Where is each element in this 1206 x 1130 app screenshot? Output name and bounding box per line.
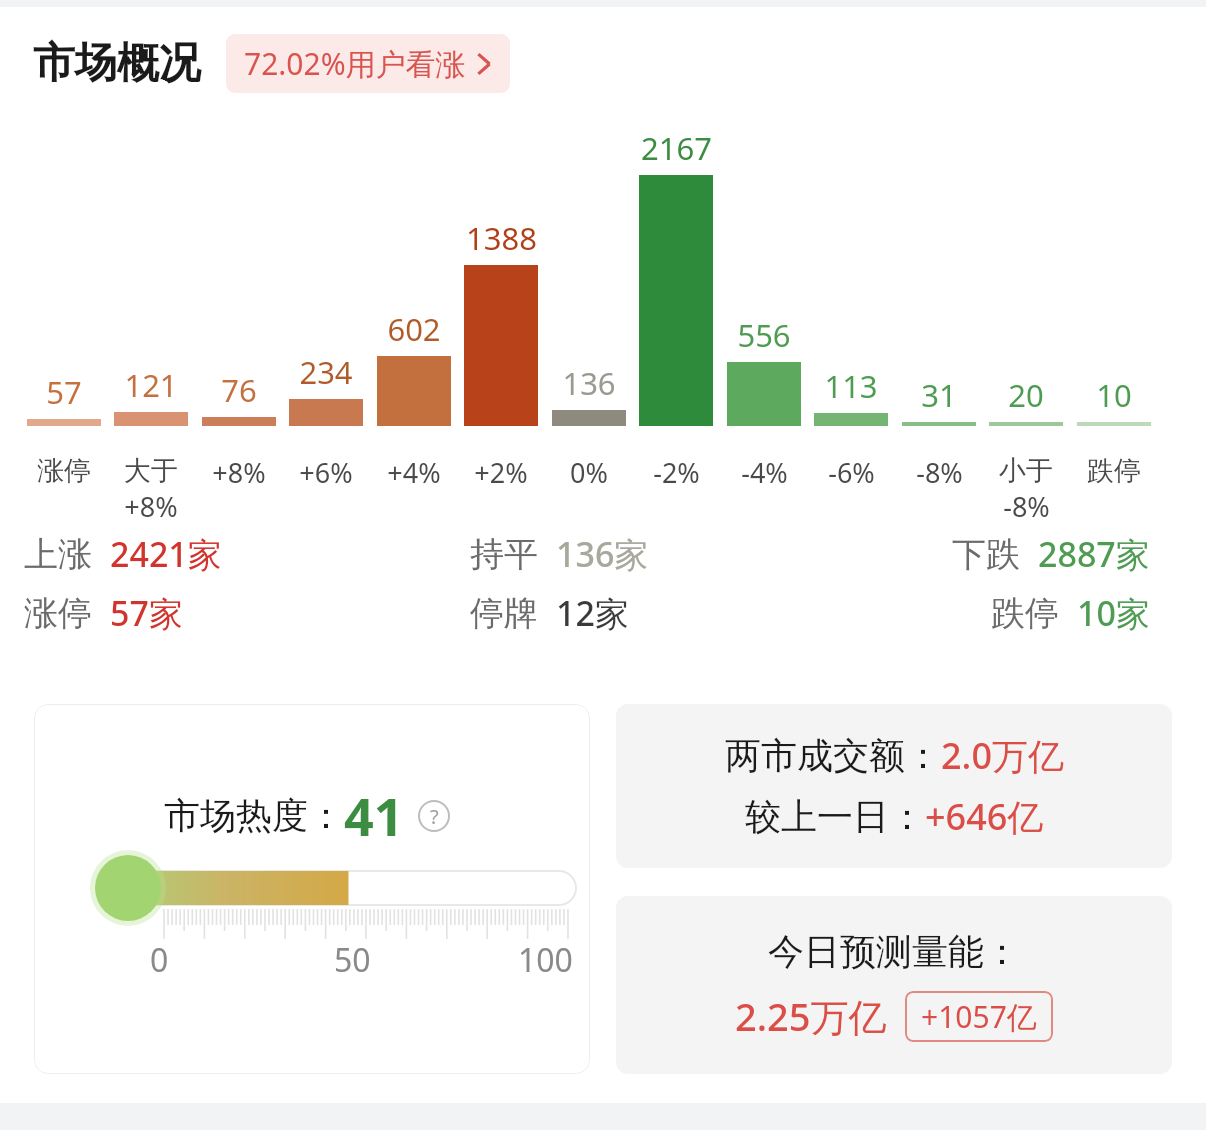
staticText: 20 xyxy=(1008,374,1044,416)
staticText: ? xyxy=(430,803,439,830)
staticText: 12家 xyxy=(556,590,629,636)
staticText: 1388 xyxy=(466,217,537,259)
staticText: 100 xyxy=(518,938,573,982)
staticText: 大于 xyxy=(124,454,178,488)
staticText: 76 xyxy=(221,369,257,411)
staticText: -6% xyxy=(828,454,875,491)
staticText: 2.0万亿 xyxy=(941,731,1064,780)
staticText: 上涨 xyxy=(24,533,92,576)
button[interactable]: 72.02%用户看涨 xyxy=(226,34,510,93)
staticText: 两市成交额： xyxy=(725,733,941,778)
staticText: +646亿 xyxy=(925,792,1044,841)
staticText: +6% xyxy=(299,454,353,491)
button[interactable]: 帮助 xyxy=(418,800,450,832)
staticText: 50 xyxy=(334,938,371,982)
staticText: +4% xyxy=(387,454,441,491)
staticText: 涨停 xyxy=(37,454,91,488)
staticText: 234 xyxy=(299,351,353,393)
staticText: 下跌 xyxy=(952,533,1020,576)
staticText: 136 xyxy=(562,362,616,404)
staticText: 41 xyxy=(344,780,404,851)
staticText: 57 xyxy=(46,371,82,413)
staticText: 涨停 xyxy=(24,592,92,635)
staticText: 57家 xyxy=(110,590,183,636)
staticText: -8% xyxy=(916,454,963,491)
staticText: 2887家 xyxy=(1038,531,1150,577)
staticText: 停牌 xyxy=(470,592,538,635)
staticText: 136家 xyxy=(556,531,649,577)
staticText: 市场概况 xyxy=(33,37,201,90)
staticText: 10 xyxy=(1096,374,1132,416)
staticText: 小于 xyxy=(999,454,1053,488)
button[interactable]: 市场热度： xyxy=(34,704,590,1074)
staticText: 今日预测量能： xyxy=(768,929,1020,974)
staticText: +1057亿 xyxy=(921,996,1037,1037)
staticText: 2.25万亿 xyxy=(735,990,887,1042)
staticText: 跌停 xyxy=(1087,454,1141,488)
staticText: 113 xyxy=(824,365,878,407)
staticText: 121 xyxy=(124,364,178,406)
staticText: +8% xyxy=(212,454,266,491)
staticText: 较上一日： xyxy=(745,794,925,839)
staticText: -2% xyxy=(653,454,700,491)
staticText: 2421家 xyxy=(110,531,222,577)
staticText: 556 xyxy=(737,314,791,356)
staticText: +2% xyxy=(474,454,528,491)
staticText: 0% xyxy=(570,454,608,491)
button[interactable]: 两市成交额： xyxy=(616,704,1172,868)
staticText: 持平 xyxy=(470,533,538,576)
staticText: -4% xyxy=(741,454,788,491)
staticText: 602 xyxy=(387,308,441,350)
button[interactable]: 今日预测量能： xyxy=(616,896,1172,1074)
staticText: 市场热度： xyxy=(164,793,344,838)
staticText: -8% xyxy=(1003,488,1050,525)
staticText: 10家 xyxy=(1077,590,1150,636)
staticText: 0 xyxy=(150,938,169,982)
staticText: 31 xyxy=(921,374,957,416)
staticText: +8% xyxy=(124,488,178,525)
staticText: 跌停 xyxy=(991,592,1059,635)
staticText: 2167 xyxy=(641,127,712,169)
staticText: 72.02%用户看涨 xyxy=(244,43,466,84)
